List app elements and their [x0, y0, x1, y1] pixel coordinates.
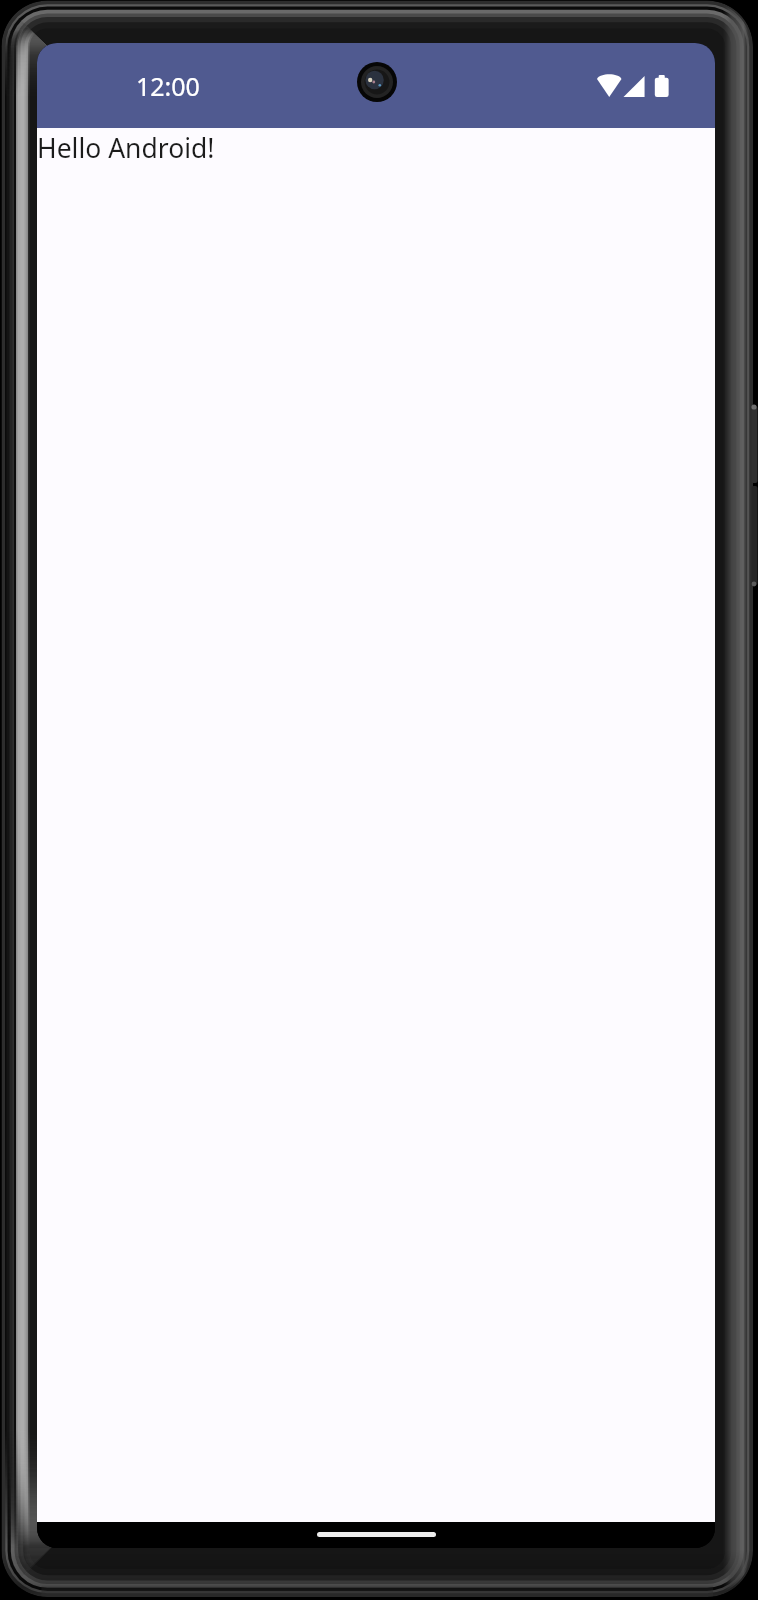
button[interactable]: Wi-Fi, mobile signal and battery status [597, 75, 669, 97]
button[interactable]: Hello Android! [37, 130, 215, 166]
staticText: 12:00 [136, 69, 200, 103]
button[interactable]: Home [317, 1532, 436, 1537]
